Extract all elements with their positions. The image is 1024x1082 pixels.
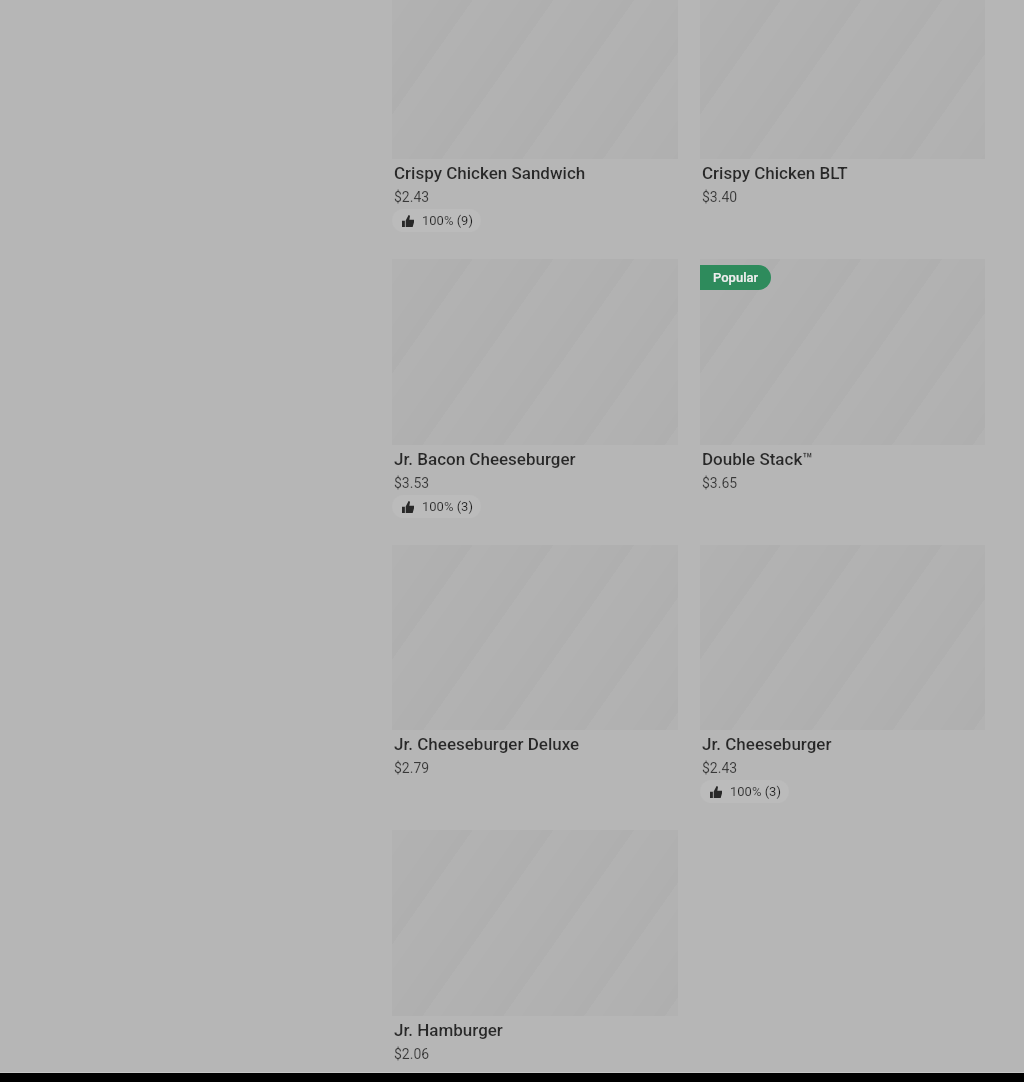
staticText: Jr. Bacon Cheeseburger [394,449,576,469]
button[interactable]: Thumbs up rating [402,495,473,518]
staticText: $3.53 [394,475,430,491]
staticText: 100% (3) [422,499,473,514]
staticText: Jr. Cheeseburger [702,734,832,754]
staticText: $2.43 [702,760,738,776]
staticText: $2.06 [394,1046,430,1062]
staticText: Crispy Chicken Sandwich [394,163,586,183]
staticText: $2.79 [394,760,430,776]
staticText: Crispy Chicken BLT [702,163,848,183]
staticText: $2.43 [394,189,430,205]
button[interactable]: Popular [700,259,985,491]
button[interactable]: Thumbs up rating [402,209,473,232]
button[interactable]: Jr. Hamburger [392,830,678,1062]
staticText: $3.65 [702,475,738,491]
other: Thumbs up rating [710,786,722,798]
button[interactable]: Jr. Cheeseburger Deluxe [392,545,678,776]
staticText: 100% (9) [422,213,473,228]
button[interactable]: Thumbs up rating [710,780,781,803]
staticText: 100% (3) [730,784,781,799]
button[interactable]: Crispy Chicken BLT [700,0,985,205]
staticText: $3.40 [702,189,738,205]
staticText: Popular [713,270,759,285]
button[interactable]: Jr. Bacon Cheeseburger [392,259,678,518]
other: Thumbs up rating [402,215,414,227]
button[interactable]: Crispy Chicken Sandwich [392,0,678,232]
staticText: Jr. Hamburger [394,1020,503,1040]
other: Thumbs up rating [402,501,414,513]
staticText: Jr. Cheeseburger Deluxe [394,734,580,754]
button[interactable]: Jr. Cheeseburger [700,545,985,803]
staticText: Double Stack™ [702,449,813,469]
